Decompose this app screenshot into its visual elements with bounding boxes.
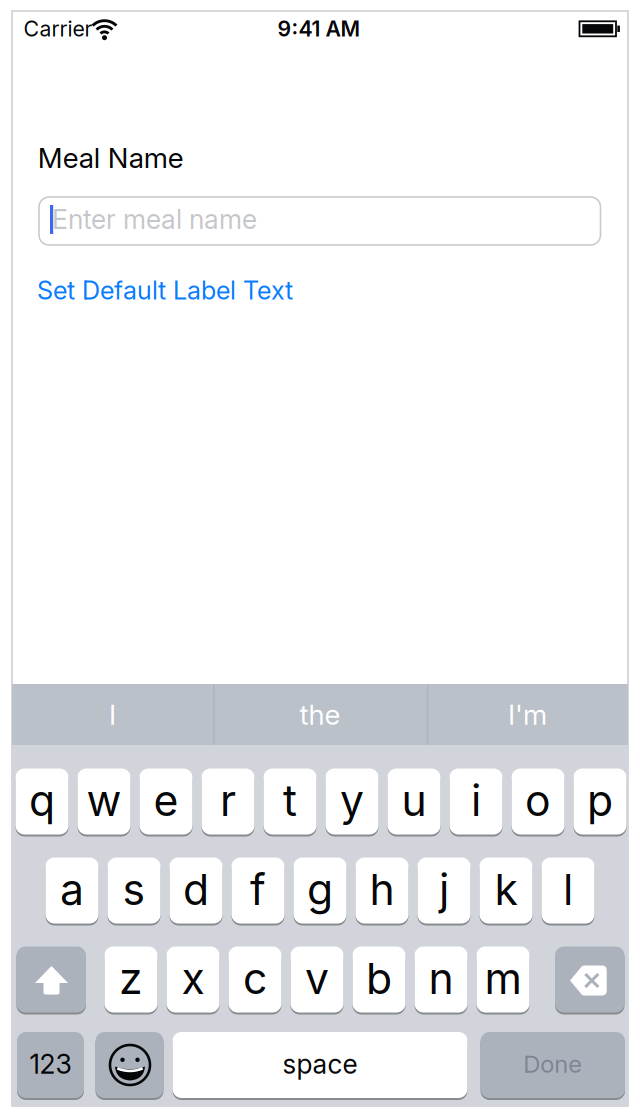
staticText: the (299, 698, 340, 731)
staticText: y (340, 775, 364, 826)
button[interactable]: m (476, 946, 529, 1012)
button[interactable]: q (15, 768, 68, 834)
staticText: e (153, 775, 178, 826)
staticText: v (305, 953, 329, 1004)
button[interactable]: I'm (429, 684, 625, 745)
staticText: Set Default Label Text (37, 275, 293, 305)
button[interactable]: Enter meal name (39, 197, 600, 245)
staticText: I'm (508, 698, 547, 731)
staticText: d (183, 864, 209, 915)
staticText: b (366, 953, 392, 1004)
staticText: o (525, 775, 551, 826)
button[interactable]: p (573, 768, 626, 834)
button[interactable]: space (172, 1032, 467, 1098)
staticText: 9:41 AM (277, 16, 360, 41)
button[interactable]: l (541, 857, 594, 923)
staticText: c (243, 953, 267, 1004)
button[interactable]: i (449, 768, 502, 834)
staticText: i (471, 775, 481, 826)
staticText: z (119, 953, 143, 1004)
button[interactable]: Shift (16, 946, 86, 1012)
staticText: t (283, 775, 297, 826)
button[interactable]: e (139, 768, 192, 834)
button[interactable]: z (104, 946, 157, 1012)
staticText: q (29, 775, 55, 826)
button[interactable]: f (231, 857, 284, 923)
button[interactable]: w (77, 768, 130, 834)
button[interactable]: g (293, 857, 346, 923)
staticText: f (250, 864, 266, 915)
button[interactable]: c (228, 946, 281, 1012)
staticText: 123 (29, 1048, 71, 1080)
button[interactable]: the (217, 684, 423, 745)
button[interactable]: x (166, 946, 219, 1012)
button[interactable]: y (325, 768, 378, 834)
button[interactable]: d (169, 857, 222, 923)
staticText: s (122, 864, 145, 915)
staticText: n (428, 953, 453, 1004)
staticText: h (369, 864, 394, 915)
button[interactable]: 123 (17, 1032, 84, 1098)
staticText: w (86, 775, 121, 826)
button[interactable]: b (352, 946, 405, 1012)
button[interactable]: h (355, 857, 408, 923)
button[interactable]: I (14, 684, 210, 745)
staticText: x (181, 953, 204, 1004)
button[interactable]: u (387, 768, 440, 834)
button[interactable]: j (417, 857, 470, 923)
staticText: l (563, 864, 573, 915)
button[interactable]: o (511, 768, 564, 834)
button[interactable]: n (414, 946, 467, 1012)
staticText: a (60, 864, 84, 915)
button[interactable]: k (479, 857, 532, 923)
button[interactable]: r (201, 768, 254, 834)
staticText: Carrier (23, 16, 92, 41)
button[interactable]: a (45, 857, 98, 923)
button[interactable]: Set Default Label Text (37, 268, 299, 312)
button[interactable]: t (263, 768, 316, 834)
staticText: Done (523, 1050, 582, 1078)
button[interactable]: v (290, 946, 343, 1012)
button[interactable]: Done (480, 1032, 625, 1098)
staticText: space (282, 1048, 357, 1080)
button[interactable]: Emoji (95, 1032, 163, 1098)
staticText: j (439, 864, 449, 915)
button[interactable]: s (107, 857, 160, 923)
staticText: g (307, 864, 333, 915)
staticText: Meal Name (38, 141, 184, 174)
staticText: u (401, 775, 426, 826)
staticText: I (109, 698, 116, 731)
staticText: m (484, 953, 521, 1004)
button[interactable]: Delete (555, 946, 624, 1012)
staticText: p (587, 775, 613, 826)
staticText: k (494, 864, 517, 915)
staticText: r (220, 775, 236, 826)
staticText: Enter meal name (52, 204, 257, 235)
